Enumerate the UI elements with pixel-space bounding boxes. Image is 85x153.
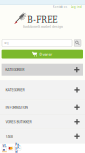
- staticText: 0 varer: [40, 51, 53, 57]
- button[interactable]: KATEGORIER: [2, 64, 83, 76]
- staticText: funktionelt møbel design: [23, 24, 63, 28]
- staticText: B-FREE: [27, 15, 57, 25]
- button[interactable]: TAGS: [0, 129, 85, 143]
- staticText: Søg: [4, 41, 9, 45]
- staticText: TAGS: [5, 134, 13, 139]
- button[interactable]: 0 varer: [2, 50, 83, 58]
- button[interactable]: Search: [74, 39, 81, 46]
- staticText: Log ind: [71, 5, 82, 9]
- staticText: PayPal: [15, 143, 20, 153]
- staticText: KATEGORIER: [5, 67, 24, 72]
- staticText: VORES BUTIKKER: [5, 119, 31, 124]
- button[interactable]: INFORMATION: [0, 100, 85, 114]
- button[interactable]: VORES BUTIKKER: [0, 115, 85, 129]
- button[interactable]: Kontakt os: [53, 5, 67, 9]
- button[interactable]: Log ind: [71, 5, 82, 9]
- button[interactable]: KATEGORIER: [0, 80, 85, 100]
- staticText: KATEGORIER: [5, 87, 24, 92]
- staticText: Kontakt os: [53, 5, 67, 9]
- staticText: VISA: [2, 144, 6, 151]
- staticText: INFORMATION: [5, 105, 28, 110]
